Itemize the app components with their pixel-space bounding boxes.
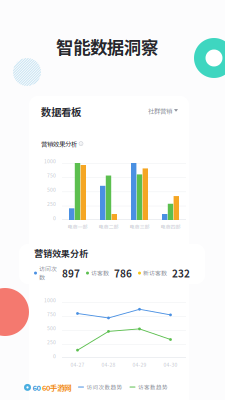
staticText: 新访客数 [143, 269, 167, 277]
staticText: 04-28 [101, 361, 115, 368]
staticText: 04-29 [132, 361, 146, 368]
staticText: 0 [53, 214, 56, 222]
staticText: 04-30 [163, 361, 177, 368]
staticText: 500 [47, 324, 56, 332]
staticText: 500 [47, 186, 56, 193]
staticText: 社群营销 [148, 106, 172, 115]
staticText: 电商四部 [160, 223, 180, 230]
staticText: 250 [47, 200, 56, 207]
staticText: 250 [47, 338, 56, 346]
staticText: 60 [32, 382, 40, 393]
staticText: 1000 [44, 296, 56, 304]
staticText: 750 [47, 310, 56, 318]
staticText: 数据看板 [41, 104, 81, 119]
staticText: 232 [172, 266, 190, 280]
staticText: 750 [47, 172, 56, 179]
staticText: 营销效果分析 [34, 246, 88, 259]
staticText: 电商一部 [67, 223, 87, 230]
staticText: 营销效果分析 [41, 139, 77, 148]
staticText: 访问次数趋势 [86, 383, 122, 391]
staticText: 60手游网 [42, 382, 71, 393]
staticText: 访客数 [91, 269, 109, 277]
staticText: 电商三部 [129, 223, 149, 230]
staticText: 智能数据洞察 [56, 34, 158, 59]
staticText: 访问次数 [39, 265, 57, 282]
staticText: 访客数趋势 [138, 383, 168, 391]
staticText: 786 [114, 266, 132, 280]
staticText: 电商二部 [98, 223, 118, 230]
staticText: 04-27 [70, 361, 84, 368]
button[interactable]: 社群营销 [148, 106, 178, 115]
staticText: 1000 [44, 157, 56, 165]
staticText: 897 [62, 266, 80, 280]
staticText: 0 [53, 352, 56, 360]
